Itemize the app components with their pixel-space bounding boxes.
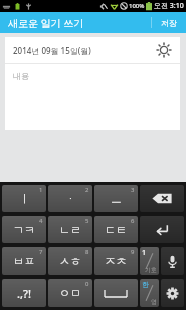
staticText: 0	[85, 280, 89, 288]
button[interactable]: Settings	[161, 279, 184, 307]
staticText: 2	[85, 186, 89, 194]
button[interactable]: Backspace	[140, 185, 184, 212]
button[interactable]: Space	[94, 279, 138, 307]
button[interactable]: ㅅㅎ	[48, 247, 92, 275]
staticText: ㄷㅌ	[105, 223, 127, 237]
button[interactable]: 내용	[5, 64, 180, 130]
staticText: ㅇㅁ	[59, 286, 81, 300]
button[interactable]: 2014년 09월 15일(월)	[13, 45, 91, 56]
button[interactable]: ㅂㅍ	[2, 247, 46, 275]
staticText: 8	[85, 248, 89, 256]
staticText: 6	[131, 217, 135, 225]
button[interactable]: ㄷㅌ	[94, 216, 138, 243]
staticText: 내용	[13, 71, 29, 81]
button[interactable]: 저장	[152, 12, 186, 33]
button[interactable]: 1 / 기호	[140, 247, 159, 275]
staticText: 저장	[161, 18, 177, 28]
staticText: 한	[142, 280, 149, 289]
staticText: ㆍ	[65, 192, 76, 206]
staticText: 오전 3:10	[154, 1, 184, 11]
button[interactable]: ㅇㅁ	[48, 279, 92, 307]
staticText: 100%	[129, 2, 145, 10]
staticText: 7	[39, 248, 43, 256]
button[interactable]: ㅣ	[2, 185, 46, 212]
button[interactable]: Voice input	[161, 247, 184, 275]
button[interactable]: ㅡ	[94, 185, 138, 212]
button[interactable]: Enter	[140, 216, 184, 243]
button[interactable]: 한 / 영	[140, 279, 159, 307]
staticText: 4	[39, 217, 43, 225]
staticText: 기호	[145, 266, 157, 274]
staticText: 새로운 일기 쓰기	[8, 16, 84, 30]
staticText: ㅂㅍ	[13, 254, 35, 268]
staticText: ㅈㅊ	[105, 254, 127, 268]
staticText: ㅣ	[19, 192, 30, 206]
staticText: ㄱㅋ	[13, 223, 35, 237]
button[interactable]: ㄱㅋ	[2, 216, 46, 243]
button[interactable]: .,?!	[2, 279, 46, 307]
staticText: .,?!	[17, 286, 31, 301]
staticText: ㄴㄹ	[59, 223, 81, 237]
staticText: 3	[131, 186, 135, 194]
button[interactable]: ㅈㅊ	[94, 247, 138, 275]
staticText: 1	[142, 248, 147, 258]
staticText: 영	[151, 298, 157, 306]
staticText: ㅡ	[111, 192, 122, 206]
staticText: 9	[131, 248, 135, 256]
staticText: 1	[39, 186, 43, 194]
staticText: ㅅㅎ	[59, 254, 81, 268]
button[interactable]: ㄴㄹ	[48, 216, 92, 243]
staticText: 5	[85, 217, 89, 225]
button[interactable]: ㆍ	[48, 185, 92, 212]
button[interactable]: Weather: sunny	[155, 41, 173, 59]
